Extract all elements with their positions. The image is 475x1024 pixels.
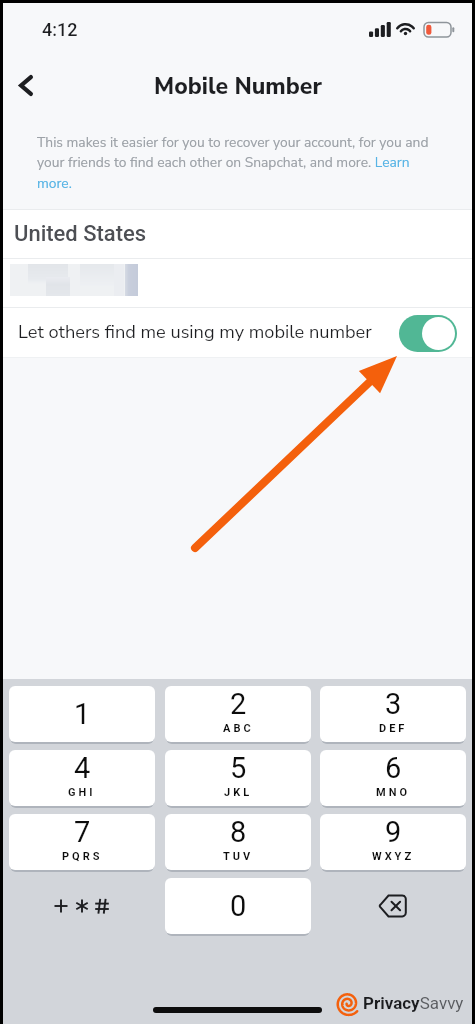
button[interactable]: 2 [165,686,311,742]
staticText: United States [14,221,147,247]
button[interactable]: 0 [165,878,311,934]
staticText: PrivacySavvy [363,993,464,1013]
staticText: 4 [74,751,91,785]
staticText: WXYZ [372,850,415,863]
button[interactable]: 4 [9,750,155,806]
staticText: 0 [230,889,247,923]
staticText: This makes it easier for you to recover … [37,133,431,193]
staticText: MNO [376,786,410,799]
button[interactable]: 5 [165,750,311,806]
button[interactable]: 7 [9,814,155,870]
staticText: 5 [230,751,247,785]
button[interactable]: Let others find me using my mobile numbe… [3,308,472,357]
button[interactable]: Symbols [9,878,155,934]
staticText: ABC [223,722,254,735]
staticText: TUV [223,850,254,863]
staticText: 7 [74,815,91,849]
staticText: 2 [230,687,247,721]
staticText: JKL [224,786,253,799]
button[interactable]: 8 [165,814,311,870]
staticText: 9 [385,815,402,849]
staticText: Let others find me using my mobile numbe… [18,320,372,345]
button[interactable]: 9 [320,814,466,870]
staticText: PQRS [62,850,103,863]
staticText: DEF [379,722,408,735]
staticText: 8 [230,815,247,849]
button[interactable]: 1 [9,686,155,742]
button[interactable]: Backspace [320,878,466,934]
staticText: 3 [385,687,402,721]
staticText: GHI [68,786,96,799]
button[interactable]: United States [3,210,472,258]
staticText: 4:12 [42,19,78,40]
staticText: Mobile Number [154,71,322,102]
button[interactable]: 3 [320,686,466,742]
button[interactable]: 6 [320,750,466,806]
staticText: 6 [385,751,402,785]
staticText: 1 [74,697,91,731]
button[interactable]: Back [5,62,49,106]
